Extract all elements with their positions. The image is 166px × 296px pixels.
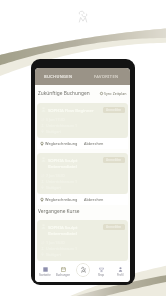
staticText: Shop bbox=[98, 273, 105, 277]
staticText: Anmelden bbox=[106, 225, 122, 229]
staticText: Vergangene Kurse bbox=[38, 208, 80, 215]
button[interactable]: Wegbeschreibung bbox=[40, 141, 78, 146]
staticText: BUCHUNGEN bbox=[44, 74, 73, 79]
button[interactable]: Anmelden bbox=[103, 157, 125, 163]
button[interactable]: Anmelden bbox=[103, 224, 125, 230]
staticText: Wegbeschreibung bbox=[45, 141, 78, 146]
button[interactable]: Abbrechen bbox=[84, 197, 104, 202]
button[interactable]: SOPHIA Sculpt bbox=[37, 220, 128, 261]
staticText: SOPHIA Sculpt bbox=[48, 157, 78, 163]
button[interactable]: Shop bbox=[92, 262, 111, 282]
staticText: Abbrechen bbox=[84, 141, 104, 146]
button[interactable]: SOPHIA Sculpt bbox=[37, 153, 128, 194]
staticText: Anmelden bbox=[106, 108, 122, 112]
staticText: Abbrechen bbox=[84, 197, 104, 202]
staticText: FAVORITEN bbox=[94, 74, 119, 79]
button[interactable]: Profil bbox=[111, 262, 130, 282]
staticText: (Intermediate) bbox=[48, 230, 78, 236]
staticText: Buchungen bbox=[56, 273, 71, 277]
button[interactable]: Sync Zeitplan bbox=[100, 91, 127, 96]
staticText: Wegbeschreibung bbox=[45, 197, 78, 202]
staticText: Startseite bbox=[39, 273, 51, 277]
staticText: SOPHIA Flow Beginner bbox=[48, 107, 94, 113]
staticText: Zukünftige Buchungen bbox=[38, 90, 90, 97]
button[interactable]: Abbrechen bbox=[84, 141, 104, 146]
staticText: (Intermediate) bbox=[48, 163, 78, 169]
staticText: Profil bbox=[117, 273, 124, 277]
button[interactable]: Kurs buchen bbox=[76, 263, 90, 277]
button[interactable]: BUCHUNGEN bbox=[35, 68, 82, 85]
button[interactable]: Startseite bbox=[35, 262, 54, 282]
button[interactable]: Buchungen bbox=[54, 262, 73, 282]
button[interactable]: FAVORITEN bbox=[82, 68, 130, 85]
button[interactable]: Anmelden bbox=[103, 107, 125, 113]
staticText: Anmelden bbox=[106, 158, 122, 162]
button[interactable]: Wegbeschreibung bbox=[40, 197, 78, 202]
staticText: Sync Zeitplan bbox=[104, 91, 127, 96]
button[interactable]: SOPHIA Flow Beginner bbox=[37, 103, 128, 138]
staticText: SOPHIA Sculpt bbox=[48, 224, 78, 230]
